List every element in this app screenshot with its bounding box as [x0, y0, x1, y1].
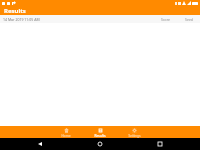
button[interactable]: Home [94, 138, 106, 150]
button[interactable]: Back [34, 138, 46, 150]
other: Home [64, 128, 69, 133]
button[interactable]: Home [49, 126, 83, 138]
other: Results [98, 128, 103, 133]
other: Settings [132, 128, 137, 133]
button[interactable]: Recent apps [154, 138, 166, 150]
button[interactable]: Settings [117, 126, 151, 138]
staticText: Score [161, 17, 171, 22]
staticText: Home [61, 134, 71, 138]
staticText: Settings [128, 134, 141, 138]
staticText: 14 Mar 2019 11:05 AM [3, 17, 40, 22]
staticText: Results [4, 7, 26, 15]
button[interactable]: Results [83, 126, 117, 138]
staticText: Seed [185, 17, 194, 22]
staticText: Results [94, 134, 106, 138]
button[interactable]: 14 Mar 2019 11:05 AM [0, 15, 200, 23]
